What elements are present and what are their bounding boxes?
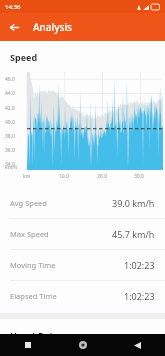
button[interactable]: Elapsed Time xyxy=(0,281,165,311)
staticText: 45.7 km/h xyxy=(112,228,155,240)
staticText: 38.0 xyxy=(5,133,15,140)
staticText: 30.0 xyxy=(134,173,144,180)
staticText: 40.0 xyxy=(5,119,15,126)
button[interactable]: Back xyxy=(110,334,165,356)
staticText: 39.0 km/h xyxy=(112,197,155,209)
staticText: Max Speed xyxy=(10,229,49,239)
button[interactable]: Recent apps xyxy=(0,334,55,356)
staticText: 36.0 xyxy=(5,147,15,154)
staticText: Analysis xyxy=(33,20,72,34)
button[interactable]: Back xyxy=(0,13,28,41)
staticText: Moving Time xyxy=(10,260,56,270)
button[interactable]: Moving Time xyxy=(0,250,165,280)
staticText: 34.0 xyxy=(5,161,15,168)
staticText: 10.0 xyxy=(59,173,69,180)
button[interactable]: Max Speed xyxy=(0,219,165,249)
staticText: 1:02:23 xyxy=(124,259,155,271)
staticText: Heart Rate xyxy=(10,329,59,334)
staticText: 42.0 xyxy=(5,105,15,112)
staticText: Elapsed Time xyxy=(10,291,57,301)
staticText: Speed xyxy=(10,51,38,63)
staticText: km/h xyxy=(5,164,18,171)
staticText: 14:36 xyxy=(5,3,21,11)
staticText: km xyxy=(23,173,31,180)
staticText: 1:02:23 xyxy=(124,290,155,302)
button[interactable]: Home xyxy=(55,334,110,356)
staticText: 44.0 xyxy=(5,90,15,97)
staticText: 20.0 xyxy=(97,173,107,180)
button[interactable]: Avg Speed xyxy=(0,188,165,218)
staticText: Avg Speed xyxy=(10,198,47,208)
staticText: 46.0 xyxy=(5,76,15,83)
